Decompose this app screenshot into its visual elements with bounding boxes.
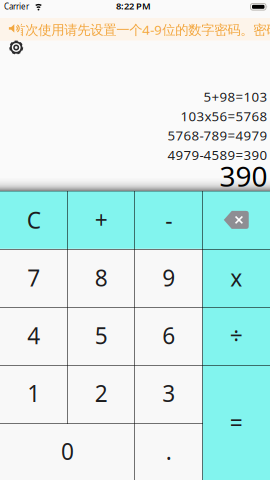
button[interactable]: x (202, 249, 270, 307)
staticText: 8 (95, 263, 108, 293)
staticText: + (95, 205, 108, 235)
staticText: C (27, 205, 41, 235)
button[interactable]: - (135, 191, 202, 249)
button[interactable]: = (202, 364, 270, 480)
staticText: 5768-789=4979 (167, 126, 267, 144)
button[interactable]: 5 (67, 307, 135, 364)
button[interactable]: 4 (0, 307, 67, 364)
button[interactable]: 6 (135, 307, 202, 364)
button[interactable]: ÷ (202, 307, 270, 364)
button[interactable]: Settings (4, 35, 28, 59)
button[interactable]: 0 (0, 422, 135, 480)
button[interactable]: 9 (135, 249, 202, 307)
staticText: 首次使用请先设置一个4-9位的数字密码。密码设置后请牢记，忘记密码将无法找回。 (12, 21, 270, 38)
button[interactable]: 2 (67, 364, 135, 422)
staticText: 1 (27, 378, 40, 408)
button[interactable]: 7 (0, 249, 67, 307)
staticText: Carrier (4, 1, 29, 12)
button[interactable]: 1 (0, 364, 67, 422)
staticText: 0 (61, 436, 74, 466)
staticText: 103x56=5768 (180, 107, 267, 125)
button[interactable]: + (67, 191, 135, 249)
staticText: 6 (162, 320, 175, 350)
staticText: - (165, 205, 172, 235)
staticText: 4 (27, 320, 40, 350)
staticText: 5 (95, 320, 108, 350)
staticText: . (166, 436, 172, 466)
staticText: 7 (27, 263, 40, 293)
staticText: 8:22 PM (116, 0, 151, 12)
button[interactable]: 8 (67, 249, 135, 307)
staticText: 4979-4589=390 (167, 146, 267, 164)
staticText: 5+98=103 (203, 88, 267, 105)
staticText: = (230, 407, 243, 437)
staticText: x (230, 263, 242, 293)
staticText: 3 (162, 378, 175, 408)
button[interactable]: Delete (202, 191, 270, 249)
staticText: 9 (162, 263, 175, 293)
staticText: ÷ (230, 320, 243, 350)
button[interactable]: . (135, 422, 202, 480)
button[interactable]: C (0, 191, 67, 249)
staticText: 2 (95, 378, 108, 408)
staticText: 390 (219, 157, 267, 194)
button[interactable]: 3 (135, 364, 202, 422)
